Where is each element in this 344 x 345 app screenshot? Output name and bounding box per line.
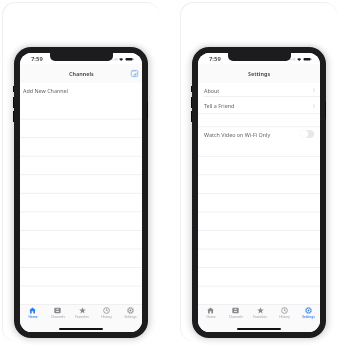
staticText: Watch Video on Wi-Fi Only bbox=[204, 131, 271, 138]
staticText: Add New Channel bbox=[23, 87, 69, 94]
button[interactable]: Settings bbox=[296, 307, 320, 326]
staticText: About bbox=[204, 87, 220, 94]
staticText: Home bbox=[206, 315, 216, 319]
button[interactable]: Settings bbox=[118, 307, 142, 326]
staticText: Home bbox=[28, 315, 38, 319]
staticText: Tell a Friend bbox=[204, 102, 235, 109]
staticText: Settings bbox=[124, 315, 137, 319]
button[interactable]: About bbox=[198, 83, 320, 97]
staticText: 7:59 bbox=[31, 55, 43, 63]
button[interactable]: Home bbox=[198, 307, 223, 326]
staticText: 7:59 bbox=[209, 55, 221, 63]
staticText: Channels bbox=[51, 315, 65, 319]
button[interactable]: Channels bbox=[45, 307, 70, 326]
staticText: Channels bbox=[69, 70, 94, 77]
staticText: History bbox=[279, 315, 290, 319]
button[interactable]: Cast to screen bbox=[131, 70, 138, 77]
button[interactable]: Favorites bbox=[248, 307, 272, 326]
staticText: Favorites bbox=[75, 315, 89, 319]
button[interactable]: Tell a Friend bbox=[198, 97, 320, 114]
button[interactable]: Home bbox=[20, 307, 45, 326]
button[interactable]: Channels bbox=[223, 307, 248, 326]
staticText: Favorites bbox=[253, 315, 267, 319]
staticText: Settings bbox=[248, 70, 271, 77]
button[interactable]: History bbox=[94, 307, 118, 326]
button[interactable] bbox=[20, 82, 142, 119]
button[interactable]: Watch Video on Wi-Fi Only bbox=[198, 126, 320, 156]
staticText: History bbox=[101, 315, 112, 319]
button[interactable]: History bbox=[272, 307, 296, 326]
staticText: Settings bbox=[302, 315, 315, 319]
button[interactable]: Favorites bbox=[70, 307, 94, 326]
staticText: Channels bbox=[229, 315, 243, 319]
